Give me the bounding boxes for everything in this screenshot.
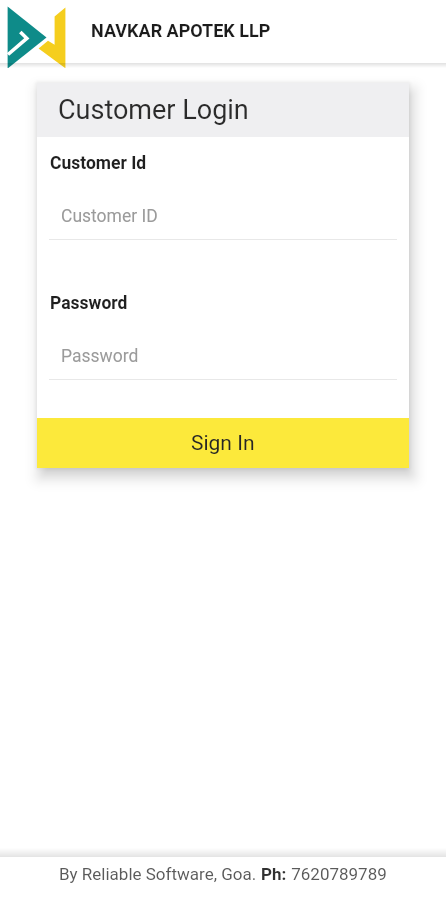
staticText: Customer Login: [58, 94, 249, 126]
staticText: Ph:: [261, 864, 287, 884]
staticText: Customer Id: [50, 153, 147, 174]
staticText: By Reliable Software, Goa.: [59, 864, 261, 884]
button[interactable]: Sign In: [37, 418, 409, 468]
button[interactable]: Customer ID: [49, 206, 397, 240]
staticText: Customer ID: [61, 206, 158, 227]
button[interactable]: Password: [49, 346, 397, 380]
staticText: Password: [50, 293, 128, 314]
staticText: Sign In: [191, 431, 255, 456]
staticText: NAVKAR APOTEK LLP: [91, 20, 271, 41]
button[interactable]: Navkar Apotek logo: [0, 0, 70, 68]
staticText: Password: [61, 346, 139, 367]
staticText: 7620789789: [287, 864, 387, 884]
